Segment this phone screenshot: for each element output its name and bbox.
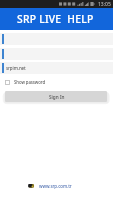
staticText: SRP LIVE HELP (17, 12, 94, 26)
staticText: Sign In (49, 94, 65, 100)
other: Website (28, 182, 35, 189)
staticText: srpim.net (6, 65, 26, 71)
staticText: 13:05 (98, 1, 111, 8)
button[interactable]: Show password (5, 79, 113, 85)
button[interactable] (0, 33, 113, 45)
button[interactable]: Website (28, 182, 72, 189)
staticText: www.srp.com.tr (39, 183, 72, 189)
button[interactable]: Sign In (5, 91, 107, 102)
button[interactable]: srpim.net (0, 62, 113, 74)
staticText: Show password (14, 79, 46, 85)
button[interactable] (0, 48, 113, 60)
